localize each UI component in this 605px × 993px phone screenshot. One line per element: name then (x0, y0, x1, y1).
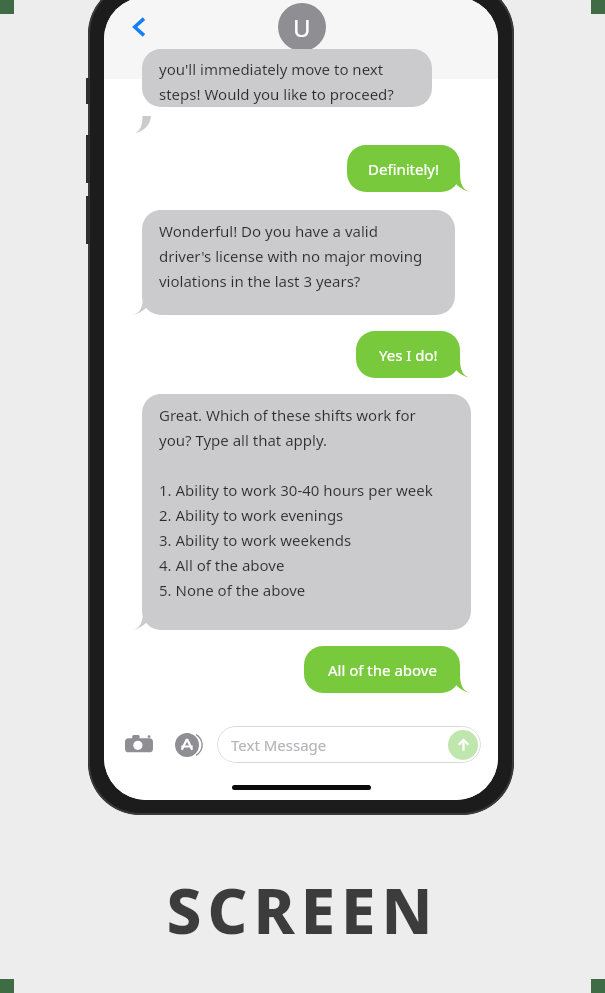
button[interactable]: Camera (121, 727, 157, 763)
button[interactable]: Yes I do! (356, 331, 460, 378)
staticText: SCREEN (0, 868, 605, 952)
button[interactable]: Send (448, 730, 478, 760)
button[interactable]: Back (118, 5, 162, 49)
staticText: Great. Which of these shifts work for yo… (159, 405, 433, 600)
staticText: you'll immediately move to next steps! W… (159, 59, 394, 104)
button[interactable]: you'll immediately move to next steps! W… (142, 49, 432, 107)
button[interactable]: Definitely! (347, 145, 460, 192)
button[interactable]: App Store (169, 727, 205, 763)
button[interactable]: Great. Which of these shifts work for yo… (142, 394, 471, 630)
staticText: UPoint (277, 54, 316, 70)
staticText: Definitely! (368, 159, 440, 179)
staticText: Wonderful! Do you have a valid driver's … (159, 221, 423, 291)
button[interactable]: U (277, 3, 326, 70)
staticText: Yes I do! (379, 345, 438, 365)
staticText: All of the above (328, 660, 437, 680)
button[interactable]: Text Message (217, 726, 481, 763)
button[interactable]: All of the above (304, 646, 460, 693)
staticText: Text Message (231, 735, 327, 755)
button[interactable]: Wonderful! Do you have a valid driver's … (142, 210, 455, 315)
staticText: U (293, 11, 311, 44)
